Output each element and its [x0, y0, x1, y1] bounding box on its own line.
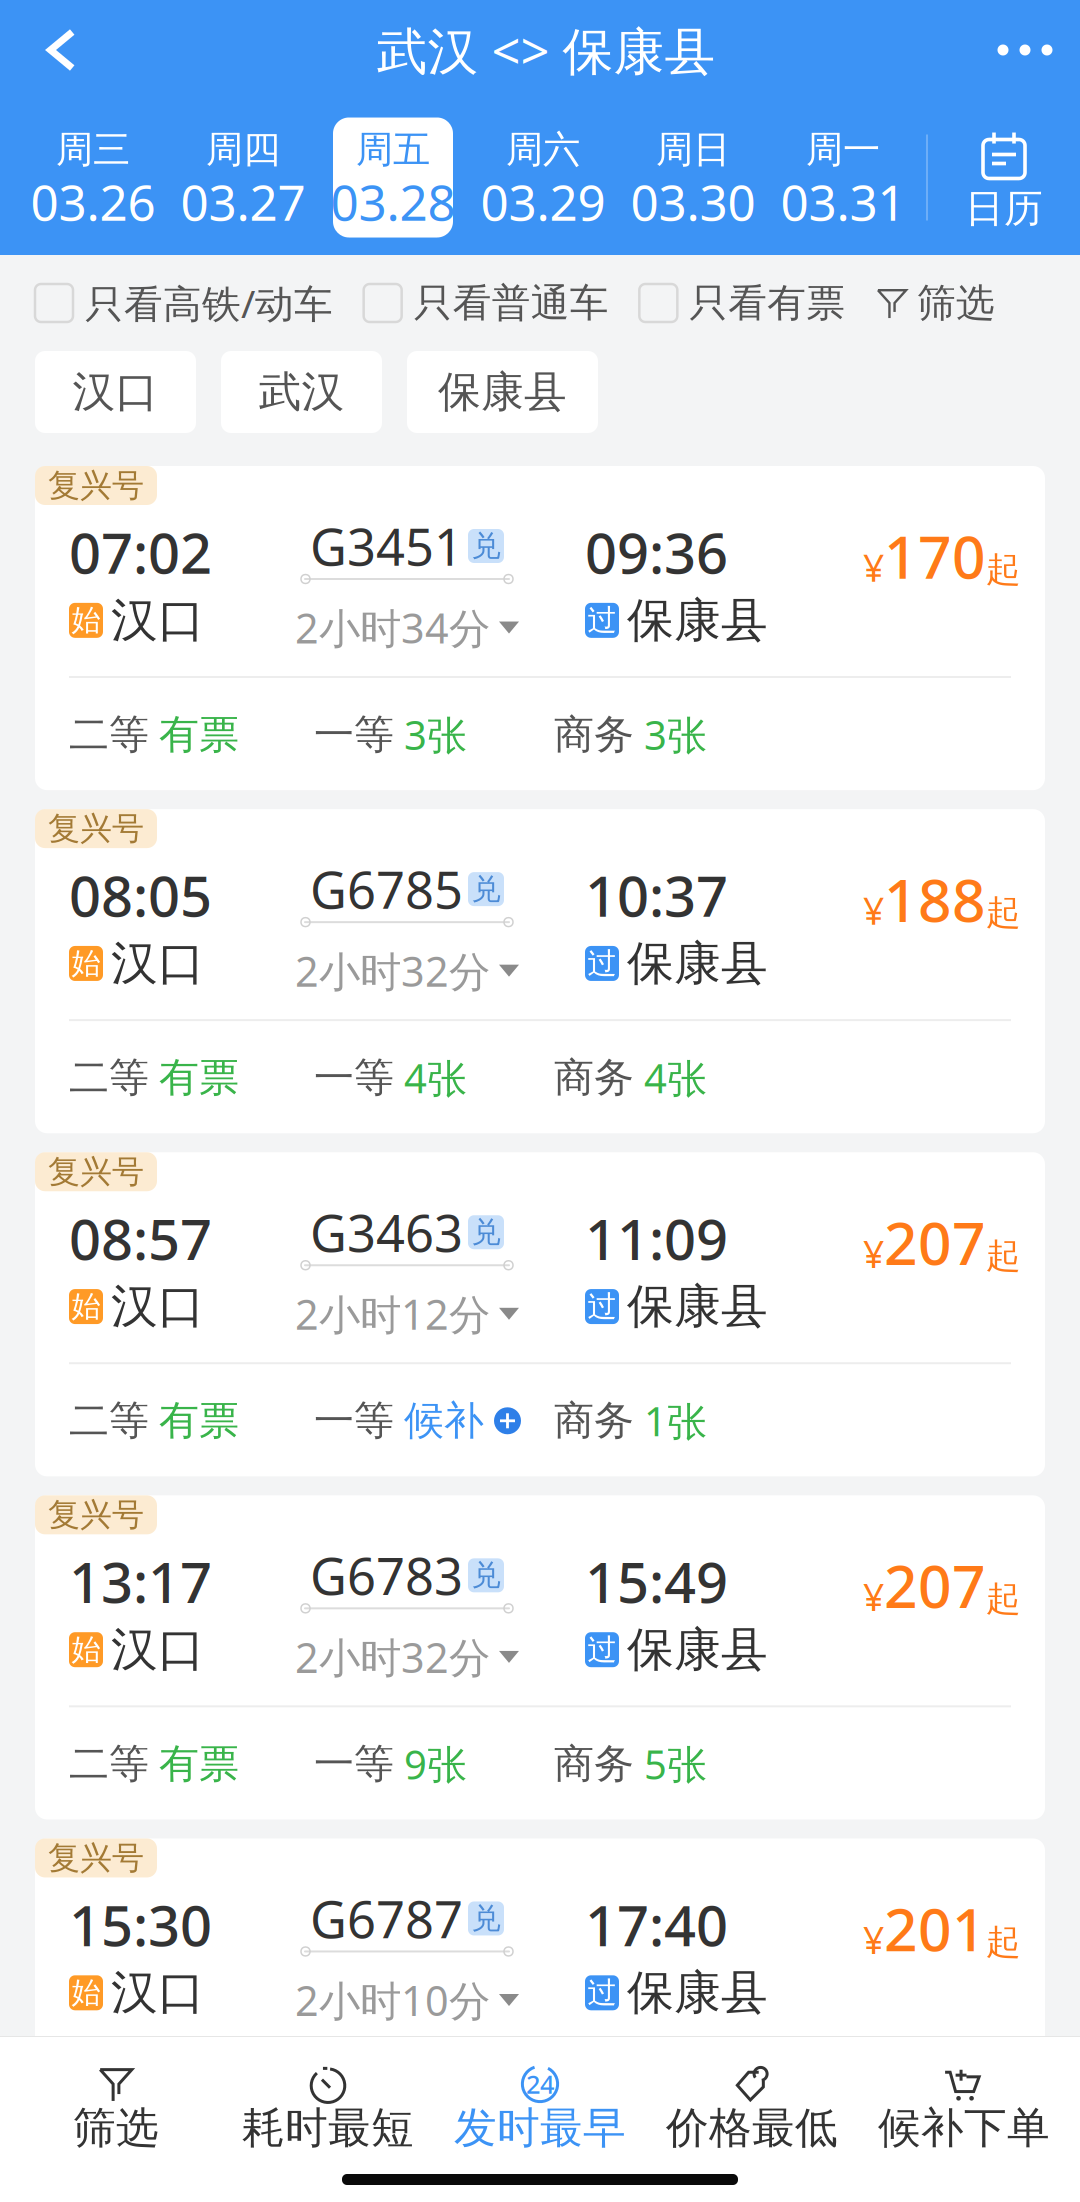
staticText: 武汉 — [258, 366, 344, 418]
staticText: 保康县 — [627, 935, 768, 992]
staticText: 商务 — [554, 2082, 634, 2132]
staticText: 兑 — [471, 528, 500, 564]
staticText: 起 — [986, 1235, 1021, 1277]
button[interactable]: 候补下单 — [858, 2062, 1070, 2150]
staticText: 6张 — [404, 2080, 467, 2134]
staticText: 11:09 — [585, 1201, 728, 1275]
staticText: 一等 — [314, 1396, 394, 1445]
button[interactable]: 汉口 — [35, 351, 196, 433]
staticText: 03.30 — [630, 169, 755, 234]
staticText: 周一 — [806, 127, 880, 172]
button[interactable]: 复兴号 — [35, 1838, 1045, 2163]
staticText: 188 — [884, 860, 986, 938]
button[interactable]: More — [970, 0, 1080, 100]
staticText: 保康县 — [627, 1621, 768, 1678]
button[interactable]: 价格最低 — [646, 2062, 858, 2150]
staticText: 有票 — [159, 1053, 239, 1102]
button[interactable]: 复兴号 — [35, 809, 1045, 1133]
staticText: 起 — [986, 548, 1021, 591]
staticText: ¥ — [863, 1915, 884, 1964]
staticText: 汉口 — [72, 366, 158, 418]
staticText: 1张 — [644, 1394, 707, 1447]
staticText: 汉口 — [111, 1621, 205, 1678]
staticText: 周五 — [356, 127, 430, 172]
staticText: 发时最早 — [454, 2102, 626, 2154]
button[interactable]: 只看高铁/动车 — [35, 277, 333, 329]
staticText: 24 — [526, 2067, 554, 2101]
button[interactable]: 周六 — [468, 112, 618, 242]
staticText: 3张 — [404, 708, 467, 761]
staticText: 日历 — [965, 185, 1043, 232]
button[interactable]: 周三 — [18, 112, 168, 242]
staticText: 始 — [71, 1975, 100, 2011]
staticText: 17:40 — [585, 1887, 728, 1962]
staticText: G6787 — [310, 1885, 463, 1952]
button[interactable]: 耗时最短 — [222, 2062, 434, 2150]
staticText: 15:49 — [585, 1544, 728, 1619]
button[interactable]: 复兴号 — [35, 466, 1045, 790]
button[interactable]: 只看普通车 — [364, 279, 609, 327]
staticText: G3451 — [310, 512, 463, 580]
staticText: 03.27 — [180, 169, 305, 234]
staticText: 09:36 — [585, 515, 728, 589]
button[interactable]: 复兴号 — [35, 1152, 1045, 1476]
staticText: 03.31 — [780, 169, 905, 234]
staticText: 复兴号 — [48, 1495, 144, 1534]
button[interactable]: 复兴号 — [35, 1495, 1045, 1819]
staticText: 汉口 — [111, 1964, 205, 2021]
staticText: 周四 — [206, 127, 280, 172]
staticText: G6783 — [310, 1542, 463, 1609]
staticText: 207 — [884, 1203, 986, 1281]
button[interactable]: 筛选 — [876, 279, 995, 327]
staticText: 一等 — [314, 710, 394, 759]
staticText: 保康县 — [438, 366, 567, 418]
staticText: 13:17 — [69, 1544, 212, 1619]
staticText: 2小时32分 — [295, 943, 490, 998]
button[interactable]: 周一 — [768, 112, 918, 242]
staticText: 周六 — [506, 127, 580, 172]
button[interactable]: Back — [0, 0, 122, 100]
staticText: 周日 — [656, 127, 730, 172]
button[interactable]: 武汉 — [221, 351, 382, 433]
staticText: 商务 — [554, 710, 634, 759]
staticText: 始 — [71, 1632, 100, 1668]
staticText: 2小时34分 — [295, 600, 490, 655]
staticText: 武汉 <> 保康县 — [376, 16, 715, 84]
staticText: 周三 — [56, 127, 130, 172]
staticText: 二等 — [69, 1396, 149, 1445]
staticText: 10:37 — [585, 858, 728, 932]
staticText: 只看有票 — [689, 279, 845, 327]
staticText: 3张 — [644, 708, 707, 761]
staticText: 汉口 — [111, 1278, 205, 1335]
staticText: 起 — [986, 1921, 1021, 1963]
staticText: G3463 — [310, 1199, 463, 1266]
staticText: 过 — [587, 1632, 616, 1668]
button[interactable]: 只看有票 — [639, 279, 845, 327]
staticText: 兑 — [471, 1557, 500, 1593]
staticText: 有票 — [159, 1396, 239, 1445]
staticText: 有票 — [159, 710, 239, 759]
staticText: 一等 — [314, 2082, 394, 2132]
staticText: 兑 — [471, 1214, 500, 1250]
staticText: 15:30 — [69, 1887, 212, 1962]
button[interactable]: 保康县 — [407, 351, 598, 433]
staticText: 只看高铁/动车 — [85, 277, 333, 329]
staticText: 过 — [587, 945, 616, 981]
staticText: 兑 — [471, 871, 500, 907]
button[interactable]: 周五 — [318, 112, 468, 242]
button[interactable]: 周日 — [618, 112, 768, 242]
staticText: 08:05 — [69, 858, 212, 932]
button[interactable]: 周四 — [168, 112, 318, 242]
button[interactable]: Calendar — [928, 112, 1080, 242]
staticText: ¥ — [863, 1572, 884, 1621]
staticText: 二等 — [69, 710, 149, 759]
staticText: ¥ — [863, 885, 884, 935]
staticText: 9张 — [404, 1737, 467, 1790]
staticText: 4张 — [644, 1051, 707, 1104]
staticText: 有票 — [159, 1739, 239, 1788]
button[interactable]: 24 — [434, 2062, 646, 2150]
staticText: 始 — [71, 602, 100, 638]
button[interactable]: 筛选 — [10, 2062, 222, 2150]
staticText: 起 — [986, 891, 1021, 934]
staticText: 2小时32分 — [295, 1629, 490, 1684]
